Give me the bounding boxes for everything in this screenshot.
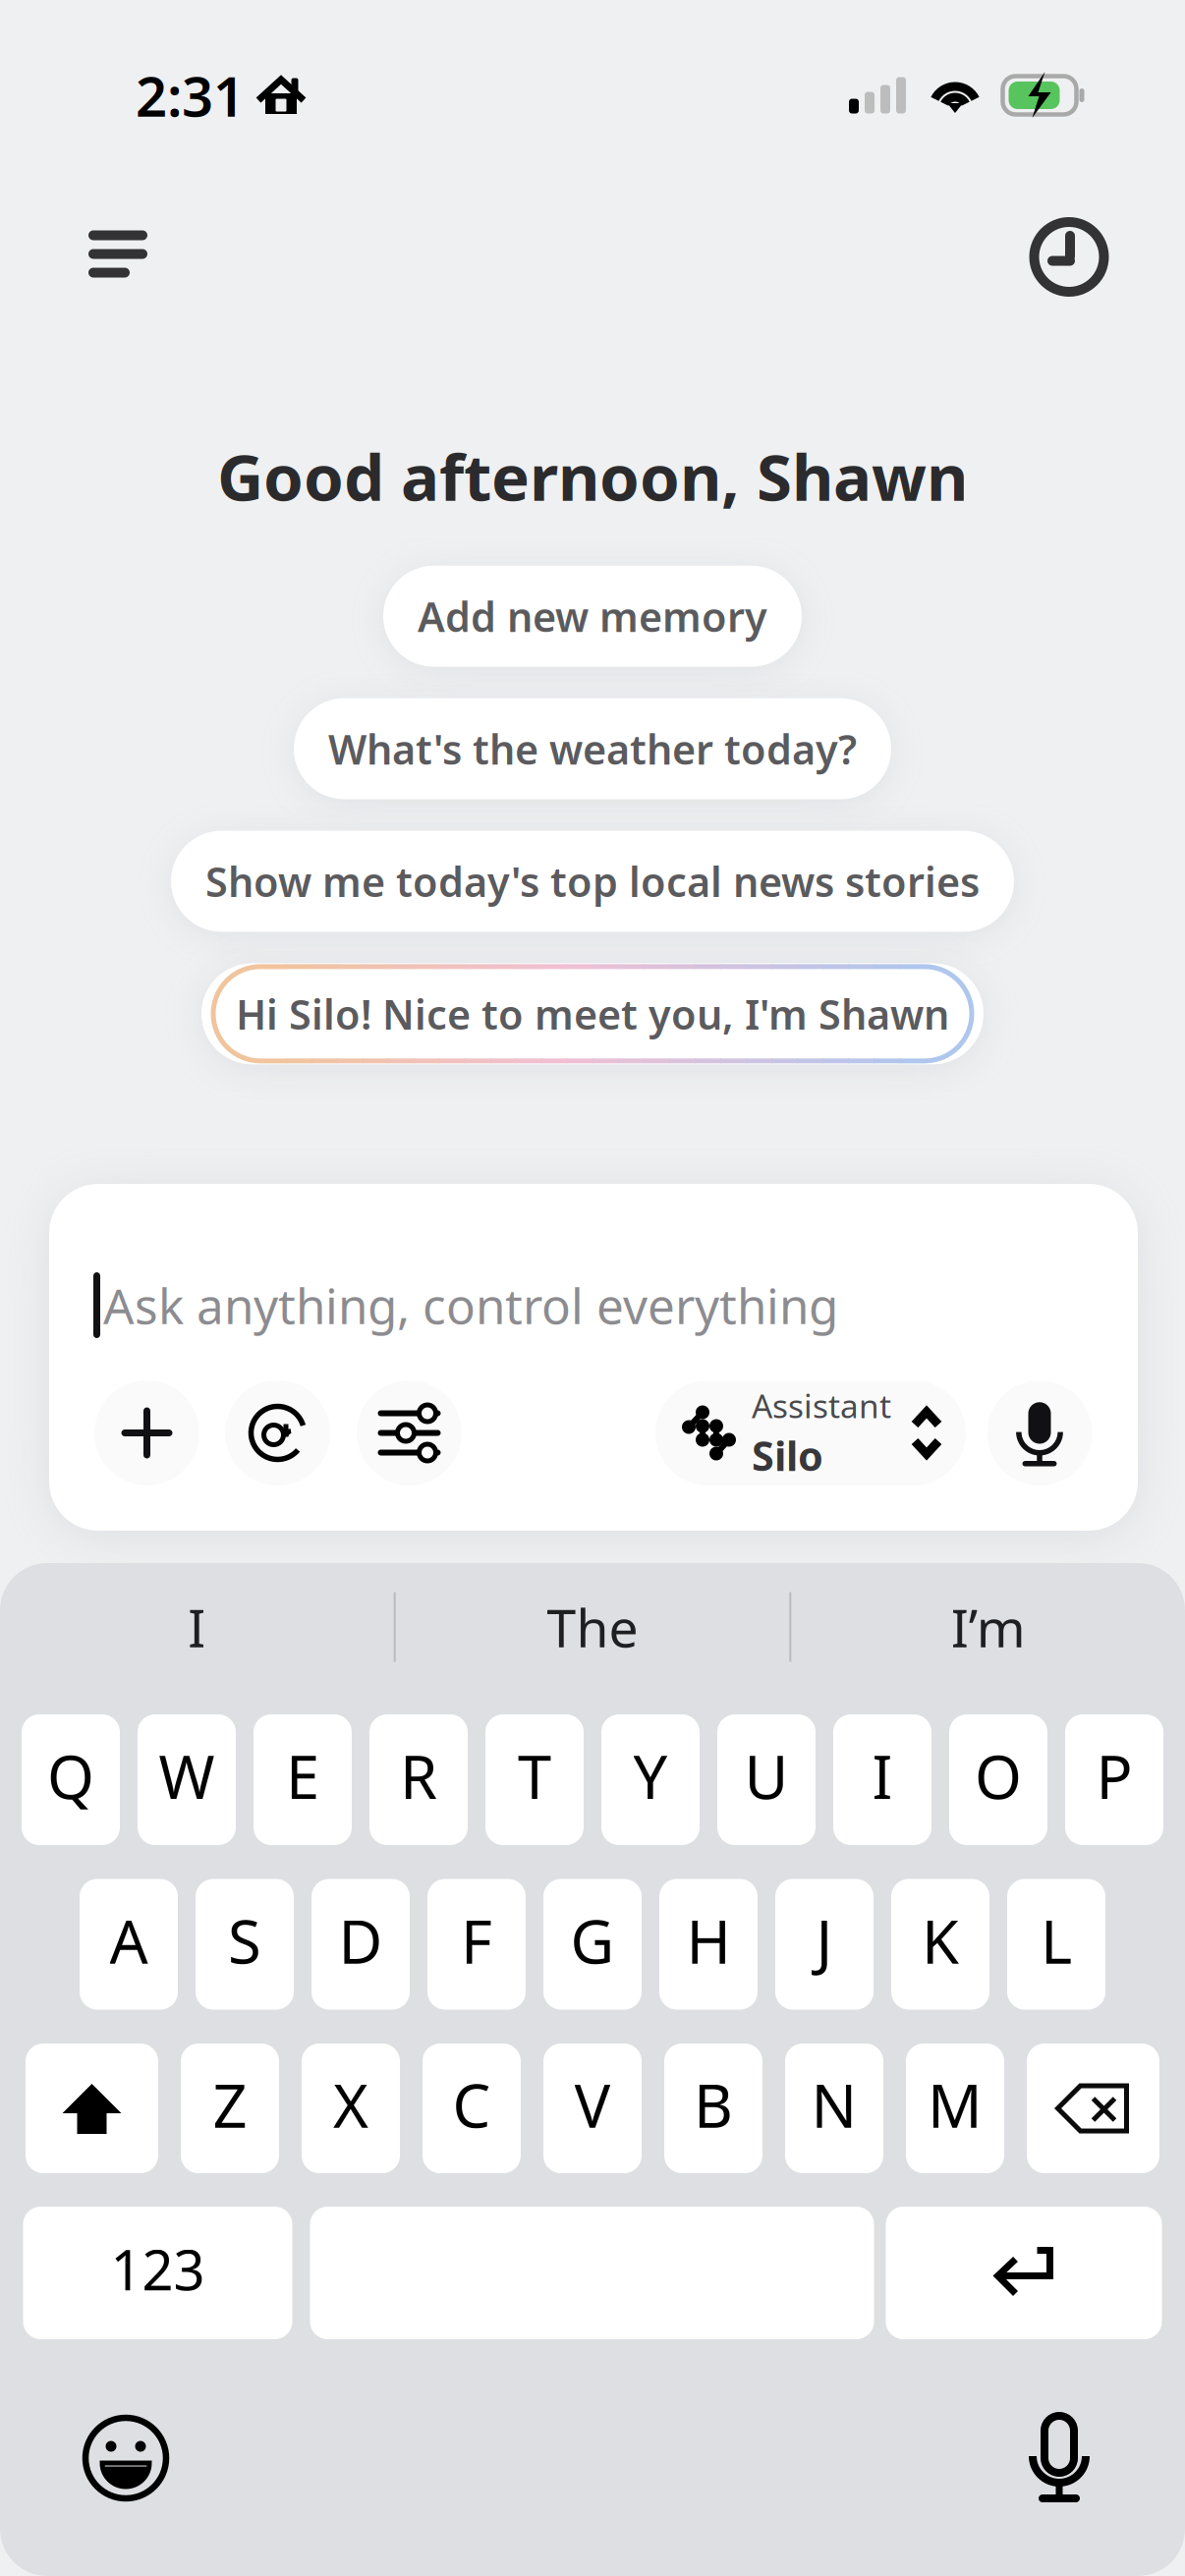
button[interactable]: R xyxy=(369,1714,468,1845)
staticText: B xyxy=(694,2064,733,2144)
staticText: O xyxy=(975,1736,1022,1816)
staticText: R xyxy=(400,1736,437,1816)
button[interactable]: Tools xyxy=(356,1380,463,1485)
staticText: Z xyxy=(213,2064,247,2144)
button[interactable]: Voice input xyxy=(986,1380,1094,1485)
staticText: The xyxy=(547,1592,638,1662)
button[interactable]: F xyxy=(427,1879,526,2010)
staticText: G xyxy=(570,1900,615,1980)
staticText: I’m xyxy=(951,1592,1026,1662)
button[interactable]: Delete xyxy=(1027,2044,1159,2173)
button[interactable]: D xyxy=(311,1879,410,2010)
button[interactable]: M xyxy=(906,2044,1004,2173)
button[interactable]: Add attachment xyxy=(93,1380,200,1485)
button[interactable]: Shift xyxy=(26,2044,158,2173)
staticText: I xyxy=(872,1736,893,1816)
button[interactable]: 123 xyxy=(23,2207,292,2339)
button[interactable]: Q xyxy=(22,1714,120,1845)
button[interactable]: Return xyxy=(886,2207,1162,2339)
button[interactable]: J xyxy=(775,1879,874,2010)
button[interactable]: Menu xyxy=(71,207,165,301)
staticText: S xyxy=(228,1900,261,1980)
button[interactable]: W xyxy=(138,1714,236,1845)
staticText: What's the weather today? xyxy=(328,722,857,776)
button[interactable]: Dictate xyxy=(1004,2403,1114,2513)
button[interactable]: K xyxy=(891,1879,989,2010)
staticText: V xyxy=(574,2064,611,2144)
button[interactable]: U xyxy=(717,1714,816,1845)
staticText: Show me today's top local news stories xyxy=(205,854,980,908)
staticText: N xyxy=(811,2064,857,2144)
button[interactable]: N xyxy=(785,2044,883,2173)
staticText: F xyxy=(461,1900,492,1980)
button[interactable]: S xyxy=(196,1879,294,2010)
staticText: C xyxy=(452,2064,491,2144)
staticText: J xyxy=(816,1900,833,1980)
staticText: Add new memory xyxy=(418,589,767,643)
button[interactable]: B xyxy=(664,2044,762,2173)
staticText: X xyxy=(333,2064,368,2144)
button[interactable]: E xyxy=(254,1714,352,1845)
button[interactable]: Hi Silo! Nice to meet you, I'm Shawn xyxy=(201,963,984,1064)
button[interactable]: L xyxy=(1007,1879,1105,2010)
button[interactable]: P xyxy=(1065,1714,1163,1845)
staticText: M xyxy=(928,2064,983,2144)
button[interactable]: X xyxy=(302,2044,400,2173)
button[interactable]: O xyxy=(949,1714,1047,1845)
button[interactable]: Mention xyxy=(224,1380,331,1485)
button[interactable]: V xyxy=(543,2044,642,2173)
staticText: Assistant xyxy=(752,1384,891,1427)
button[interactable]: What's the weather today? xyxy=(294,698,891,799)
staticText: 123 xyxy=(111,2232,205,2306)
staticText: L xyxy=(1041,1900,1072,1980)
button[interactable]: I xyxy=(833,1714,931,1845)
staticText: W xyxy=(159,1736,215,1816)
staticText: K xyxy=(922,1900,959,1980)
button[interactable]: T xyxy=(485,1714,584,1845)
button[interactable]: Show me today's top local news stories xyxy=(171,831,1014,932)
button[interactable]: History xyxy=(1022,210,1116,304)
staticText: Silo xyxy=(752,1428,823,1482)
button[interactable]: Emoji xyxy=(71,2403,181,2513)
staticText: P xyxy=(1096,1736,1132,1816)
staticText: T xyxy=(518,1736,551,1816)
button[interactable]: Assistant xyxy=(655,1380,966,1485)
button[interactable]: Add new memory xyxy=(383,566,802,667)
staticText: U xyxy=(744,1736,789,1816)
button[interactable]: C xyxy=(423,2044,521,2173)
staticText: Ask anything, control everything xyxy=(103,1273,838,1337)
staticText: Y xyxy=(633,1736,668,1816)
staticText: H xyxy=(686,1900,731,1980)
staticText: E xyxy=(286,1736,319,1816)
button[interactable]: H xyxy=(659,1879,758,2010)
staticText: Good afternoon, Shawn xyxy=(217,433,968,519)
staticText: Q xyxy=(47,1736,94,1816)
staticText: 2:31 xyxy=(136,59,245,132)
button[interactable]: Z xyxy=(181,2044,279,2173)
staticText: I xyxy=(188,1592,206,1662)
button[interactable]: Y xyxy=(601,1714,700,1845)
staticText: D xyxy=(339,1900,383,1980)
button[interactable]: A xyxy=(80,1879,178,2010)
staticText: A xyxy=(110,1900,148,1980)
staticText: Hi Silo! Nice to meet you, I'm Shawn xyxy=(236,987,949,1041)
button[interactable]: G xyxy=(543,1879,642,2010)
